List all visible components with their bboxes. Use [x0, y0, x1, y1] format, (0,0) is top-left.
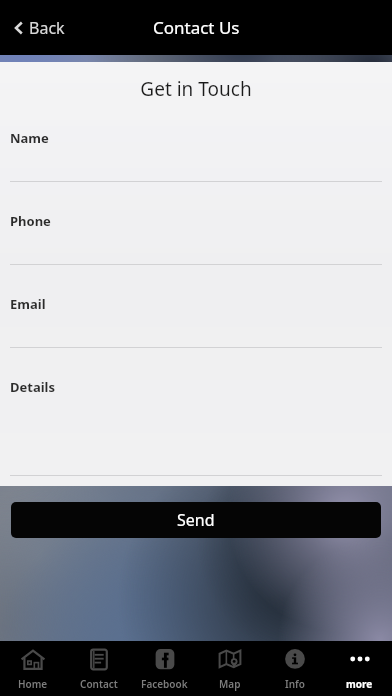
staticText: Phone: [10, 212, 51, 230]
staticText: Name: [10, 129, 49, 147]
staticText: more: [346, 677, 373, 691]
staticText: Contact Us: [153, 16, 240, 39]
button[interactable]: Facebook: [132, 641, 197, 696]
button[interactable]: Send: [11, 502, 381, 538]
button[interactable]: Info: [262, 641, 327, 696]
staticText: Facebook: [141, 677, 188, 691]
staticText: Contact: [80, 677, 118, 691]
button[interactable]: Phone: [0, 203, 392, 286]
staticText: Details: [10, 378, 55, 396]
staticText: Home: [18, 677, 48, 691]
staticText: Email: [10, 295, 46, 313]
button[interactable]: Details: [0, 369, 392, 452]
staticText: Info: [285, 677, 305, 691]
button[interactable]: Home: [0, 641, 66, 696]
staticText: Map: [219, 677, 241, 691]
button[interactable]: Email: [0, 286, 392, 369]
staticText: Send: [177, 509, 215, 531]
staticText: Get in Touch: [0, 76, 392, 102]
button[interactable]: Contact: [66, 641, 132, 696]
staticText: Back: [29, 17, 65, 39]
button[interactable]: Map: [197, 641, 262, 696]
button[interactable]: Back: [10, 11, 69, 45]
button[interactable]: Name: [0, 120, 392, 203]
button[interactable]: more: [327, 641, 392, 696]
